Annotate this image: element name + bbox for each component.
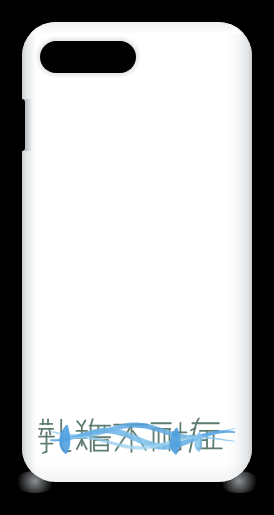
button[interactable]: White iPhone case product photo with 乳糖不… bbox=[0, 0, 274, 515]
